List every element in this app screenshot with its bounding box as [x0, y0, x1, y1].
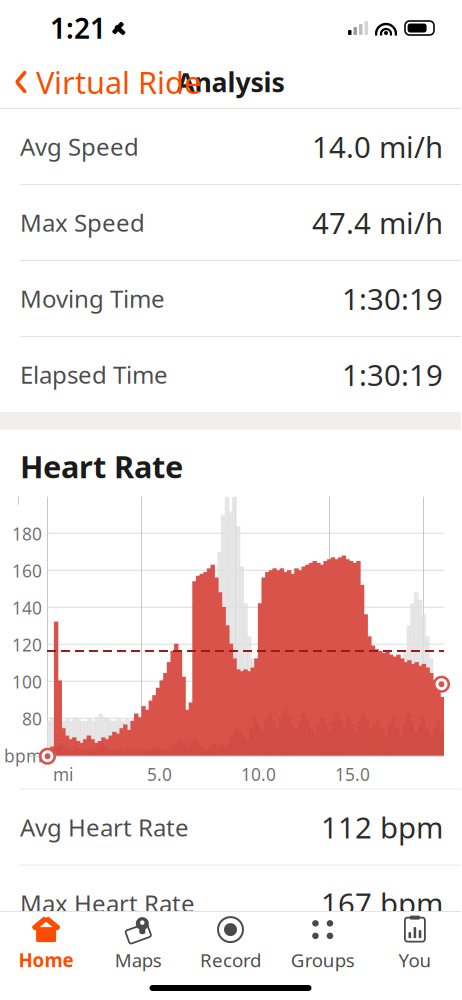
staticText: Analysis: [176, 64, 284, 100]
button[interactable]: Record: [184, 912, 277, 976]
staticText: 112 bpm: [321, 808, 443, 847]
staticText: Max Heart Rate: [20, 887, 195, 919]
staticText: Avg Heart Rate: [20, 811, 189, 843]
button[interactable]: You: [369, 912, 461, 976]
button[interactable]: Elapsed Time: [0, 337, 461, 412]
button[interactable]: Virtual Ride: [0, 54, 211, 110]
staticText: 1:30:19: [342, 355, 443, 394]
staticText: Max Speed: [20, 207, 145, 238]
staticText: Heart Rate: [20, 446, 183, 487]
staticText: 1:21: [50, 9, 106, 47]
staticText: 120: [12, 633, 42, 656]
staticText: 80: [22, 707, 42, 730]
staticText: Maps: [115, 948, 162, 972]
button[interactable]: Maps: [92, 912, 184, 976]
staticText: Elapsed Time: [20, 359, 168, 390]
button[interactable]: Max Speed: [0, 185, 461, 260]
button[interactable]: Avg Heart Rate: [0, 790, 461, 865]
staticText: 100: [12, 670, 42, 693]
staticText: Groups: [291, 948, 355, 972]
staticText: Avg Speed: [20, 131, 139, 162]
staticText: 5.0: [147, 763, 172, 786]
staticText: 167 bpm: [321, 884, 443, 923]
staticText: You: [398, 948, 431, 972]
staticText: Record: [200, 948, 261, 972]
button[interactable]: Groups: [277, 912, 369, 976]
staticText: 47.4 mi/h: [312, 203, 443, 242]
staticText: 180: [12, 522, 42, 545]
staticText: 1:30:19: [342, 279, 443, 318]
staticText: 14.0 mi/h: [312, 127, 443, 166]
staticText: 15.0: [335, 763, 370, 786]
staticText: Virtual Ride: [36, 62, 201, 102]
staticText: bpm: [4, 744, 42, 767]
button[interactable]: Max Heart Rate: [0, 866, 461, 941]
staticText: Home: [19, 948, 74, 972]
staticText: mi: [53, 763, 73, 786]
button[interactable]: Home: [0, 912, 92, 976]
staticText: 140: [12, 596, 42, 619]
staticText: 160: [12, 559, 42, 582]
button[interactable]: Moving Time: [0, 261, 461, 336]
button[interactable]: Avg Speed: [0, 109, 461, 184]
staticText: Moving Time: [20, 283, 165, 314]
staticText: 10.0: [241, 763, 276, 786]
